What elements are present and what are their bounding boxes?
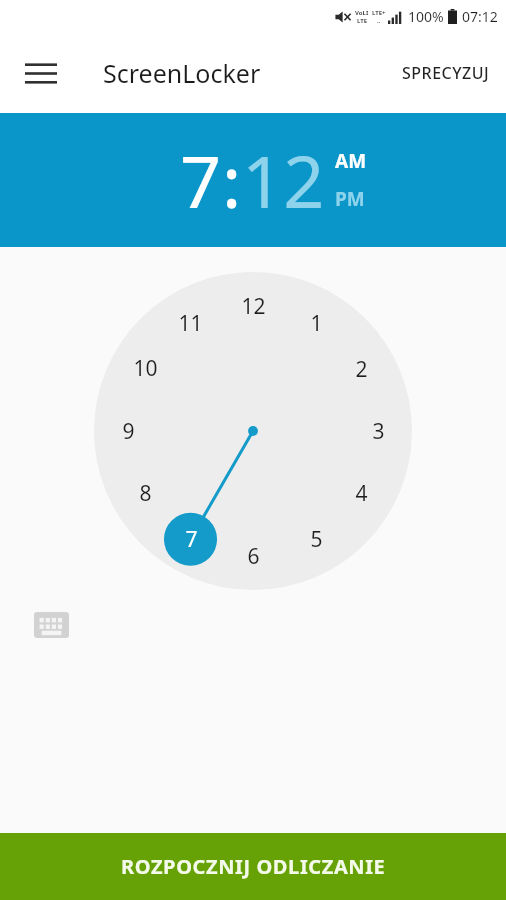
staticText: VoLI [355,9,369,17]
staticText: 9 [122,417,135,446]
button[interactable]: 12 [242,131,325,229]
staticText: 07:12 [462,7,498,26]
button[interactable]: PM [335,186,365,212]
button[interactable]: Menu [14,46,68,100]
staticText: 7 [185,525,198,554]
staticText: SPRECYZUJ [402,62,490,84]
staticText: 11 [178,309,203,338]
staticText: 12 [241,292,266,321]
staticText: .. [377,17,381,25]
button[interactable]: 7 [180,131,222,229]
staticText: ScreenLocker [103,56,261,90]
button[interactable]: AM [335,148,367,174]
staticText: : [222,131,242,229]
staticText: 10 [133,354,158,383]
staticText: LTE [357,17,368,25]
staticText: 4 [355,479,368,508]
staticText: 1 [310,309,323,338]
button[interactable]: Clock dial [94,272,412,590]
staticText: 3 [372,417,385,446]
button[interactable]: Switch to text input [28,602,74,648]
staticText: 8 [139,479,152,508]
button[interactable]: ROZPOCZNIJ ODLICZANIE [0,833,506,900]
staticText: 100% [408,7,444,26]
staticText: ROZPOCZNIJ ODLICZANIE [121,853,386,880]
button[interactable]: SPRECYZUJ [396,52,496,94]
staticText: 5 [310,525,323,554]
staticText: LTE+ [372,9,386,17]
staticText: 6 [247,542,260,571]
staticText: 2 [355,355,368,384]
